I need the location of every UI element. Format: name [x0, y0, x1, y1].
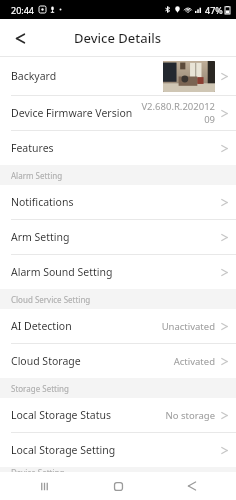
button[interactable]: Backyard	[0, 57, 236, 95]
staticText: Storage Setting	[11, 383, 69, 394]
staticText: Local Storage Setting	[11, 443, 116, 457]
button[interactable]: Cloud Storage	[0, 344, 236, 378]
staticText: Device Firmware Version	[11, 106, 133, 120]
button[interactable]: Notifications	[0, 185, 236, 219]
staticText: Features	[11, 141, 54, 155]
staticText: Notifications	[11, 195, 74, 209]
button[interactable]: Back	[6, 24, 34, 52]
staticText: Unactivated	[161, 320, 215, 333]
button[interactable]: Arm Setting	[0, 220, 236, 254]
button[interactable]: Back	[162, 472, 222, 500]
button[interactable]: AI Detection	[0, 309, 236, 343]
button[interactable]: Local Storage Status	[0, 398, 236, 432]
button[interactable]: Alarm Sound Setting	[0, 255, 236, 289]
staticText: V2.680.R.20201209	[137, 100, 215, 126]
staticText: AI Detection	[11, 319, 72, 333]
button[interactable]: Features	[0, 131, 236, 165]
staticText: Arm Setting	[11, 230, 70, 244]
staticText: Alarm Sound Setting	[11, 265, 113, 279]
staticText: Backyard	[11, 69, 57, 83]
staticText: Cloud Service Setting	[11, 294, 91, 305]
staticText: 20:44	[11, 4, 35, 16]
button[interactable]: Home	[88, 472, 148, 500]
staticText: No storage	[165, 409, 215, 422]
staticText: 47%	[205, 4, 223, 16]
staticText: Device Details	[74, 29, 162, 47]
button[interactable]: Local Storage Setting	[0, 433, 236, 467]
button[interactable]: Device Firmware Version	[0, 96, 236, 130]
staticText: Alarm Setting	[11, 170, 63, 181]
staticText: Local Storage Status	[11, 408, 112, 422]
staticText: Activated	[173, 355, 215, 368]
staticText: Cloud Storage	[11, 354, 81, 368]
button[interactable]: Recent apps	[14, 472, 74, 500]
staticText: Device Setting	[11, 467, 65, 472]
